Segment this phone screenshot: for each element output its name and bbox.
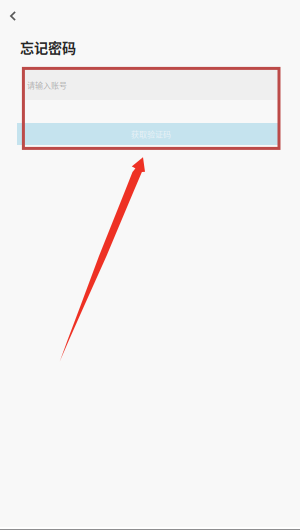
button[interactable]: 获取验证码 xyxy=(17,123,278,145)
staticText: 获取验证码 xyxy=(131,128,171,140)
button[interactable]: Back xyxy=(0,0,34,32)
staticText: 请输入账号 xyxy=(27,79,67,91)
staticText: 忘记密码 xyxy=(20,37,76,57)
button[interactable]: 请输入账号 xyxy=(24,70,279,100)
